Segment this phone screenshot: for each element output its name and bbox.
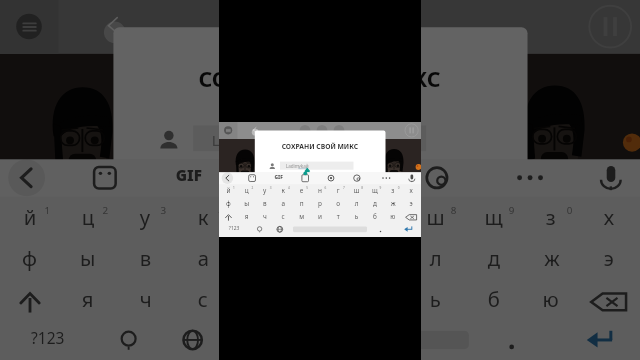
other: Video player bbox=[0, 0, 640, 360]
button[interactable]: Play / pause video bbox=[219, 122, 421, 237]
